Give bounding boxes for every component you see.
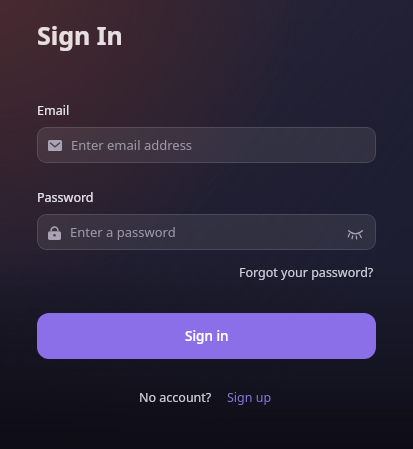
button[interactable]: Sign in xyxy=(37,313,376,359)
staticText: No account? xyxy=(139,389,212,406)
button[interactable]: Password input xyxy=(37,214,376,250)
button[interactable]: Show password xyxy=(346,225,365,240)
staticText: Enter a password xyxy=(70,223,176,241)
staticText: Enter email address xyxy=(71,136,193,154)
staticText: Forgot your password? xyxy=(239,264,374,281)
staticText: Sign in xyxy=(185,327,229,345)
button[interactable]: Email address input xyxy=(37,127,376,163)
staticText: Password xyxy=(37,189,94,206)
button[interactable]: Forgot your password? xyxy=(237,262,376,283)
staticText: Sign up xyxy=(227,389,272,406)
staticText: Sign In xyxy=(37,18,123,52)
staticText: Email xyxy=(37,102,70,119)
button[interactable]: Sign up xyxy=(225,387,274,408)
